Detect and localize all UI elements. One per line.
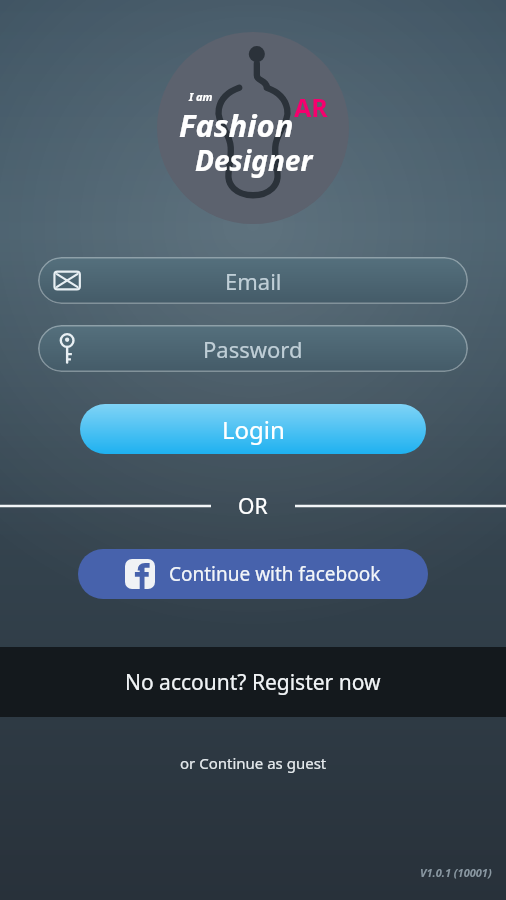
staticText: V1.0.1 (10001): [420, 865, 492, 880]
button[interactable]: Password: [38, 325, 468, 372]
staticText: No account? Register now: [125, 668, 381, 697]
staticText: Continue with facebook: [169, 561, 381, 587]
staticText: or Continue as guest: [180, 753, 327, 773]
button[interactable]: Continue with facebook: [78, 549, 428, 599]
button[interactable]: No account? Register now: [0, 647, 506, 717]
staticText: Password: [203, 334, 303, 364]
button[interactable]: Login: [80, 404, 426, 454]
staticText: AR: [294, 90, 328, 124]
staticText: Designer: [195, 141, 313, 179]
button[interactable]: Email: [38, 257, 468, 304]
staticText: OR: [238, 492, 268, 520]
staticText: Fashion: [179, 104, 294, 146]
staticText: I am: [189, 89, 213, 104]
button[interactable]: or Continue as guest: [162, 747, 345, 779]
staticText: Login: [222, 413, 285, 446]
staticText: Email: [225, 266, 282, 296]
